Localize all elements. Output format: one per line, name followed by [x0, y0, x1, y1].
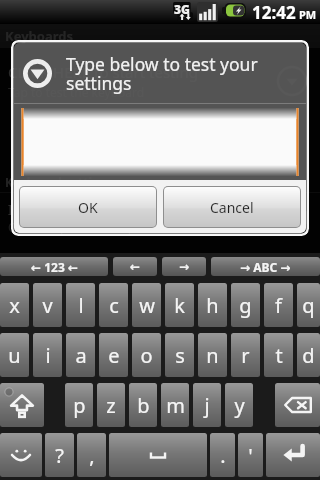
- button[interactable]: Enter: [266, 433, 320, 477]
- button[interactable]: n: [198, 333, 227, 377]
- staticText: ←: [130, 260, 141, 274]
- staticText: j: [204, 392, 210, 419]
- staticText: b: [137, 392, 150, 419]
- staticText: v: [42, 292, 53, 319]
- button[interactable]: w: [132, 283, 161, 327]
- button[interactable]: →: [162, 257, 206, 276]
- button[interactable]: Shift: [0, 383, 44, 427]
- button[interactable]: j: [193, 383, 221, 427]
- staticText: 3G: [174, 1, 190, 17]
- staticText: OK: [78, 198, 98, 217]
- button[interactable]: c: [99, 283, 128, 327]
- staticText: Input language: [8, 199, 117, 219]
- staticText: d: [302, 342, 315, 369]
- staticText: Cancel: [210, 198, 254, 217]
- staticText: y: [234, 392, 245, 419]
- button[interactable]: p: [65, 383, 93, 427]
- staticText: e: [108, 342, 120, 369]
- staticText: a: [75, 342, 87, 369]
- button[interactable]: g: [231, 283, 260, 327]
- button[interactable]: OK: [20, 187, 156, 227]
- button[interactable]: e: [99, 333, 128, 377]
- button[interactable]: u: [0, 333, 29, 377]
- staticText: f: [275, 292, 282, 319]
- staticText: z: [106, 392, 116, 419]
- button[interactable]: t: [264, 333, 293, 377]
- staticText: Tap to test the keyboard: [8, 84, 145, 100]
- staticText: q: [302, 292, 315, 319]
- staticText: l: [78, 292, 84, 319]
- staticText: u: [8, 342, 21, 369]
- staticText: m: [166, 392, 185, 419]
- staticText: h: [206, 292, 219, 319]
- staticText: .: [220, 442, 226, 469]
- button[interactable]: x: [0, 283, 29, 327]
- staticText: Keyboards: [5, 27, 73, 45]
- button[interactable]: r: [231, 333, 260, 377]
- button[interactable]: o: [132, 333, 161, 377]
- button[interactable]: ?: [45, 433, 74, 477]
- staticText: ': [248, 442, 253, 469]
- button[interactable]: i: [33, 333, 62, 377]
- button[interactable]: a: [66, 333, 95, 377]
- staticText: QWERTZ (Switzerland): [8, 219, 132, 235]
- staticText: r: [241, 342, 250, 369]
- button[interactable]: l: [66, 283, 95, 327]
- button[interactable]: y: [225, 383, 253, 427]
- button[interactable]: d: [297, 333, 320, 377]
- staticText: t: [275, 342, 283, 369]
- staticText: o: [140, 342, 153, 369]
- button[interactable]: z: [97, 383, 125, 427]
- staticText: w: [139, 292, 155, 319]
- staticText: p: [73, 392, 86, 419]
- button[interactable]: q: [297, 283, 320, 327]
- button[interactable]: b: [129, 383, 157, 427]
- staticText: → ABC →: [240, 259, 291, 275]
- button[interactable]: .: [210, 433, 235, 477]
- staticText: x: [9, 292, 20, 319]
- button[interactable]: Cancel: [164, 187, 300, 227]
- staticText: s: [175, 342, 185, 369]
- button[interactable]: k: [165, 283, 194, 327]
- staticText: n: [206, 342, 219, 369]
- button[interactable]: Delete: [275, 383, 320, 427]
- staticText: ← 123 ←: [31, 259, 78, 275]
- staticText: ?: [55, 442, 64, 469]
- button[interactable]: s: [165, 333, 194, 377]
- staticText: g: [239, 292, 252, 319]
- staticText: Keyboard settings: [5, 174, 114, 190]
- button[interactable]: → ABC →: [211, 257, 320, 276]
- button[interactable]: m: [161, 383, 189, 427]
- staticText: Type below to test your settings: [66, 52, 300, 95]
- staticText: c: [109, 292, 119, 319]
- button[interactable]: ,: [77, 433, 106, 477]
- button[interactable]: Emoji: [0, 433, 42, 477]
- button[interactable]: f: [264, 283, 293, 327]
- button[interactable]: ← 123 ←: [0, 257, 108, 276]
- button[interactable]: h: [198, 283, 227, 327]
- staticText: →: [179, 260, 190, 274]
- button[interactable]: ←: [113, 257, 157, 276]
- staticText: ,: [89, 442, 95, 469]
- staticText: k: [174, 292, 185, 319]
- button[interactable]: Space: [109, 433, 207, 477]
- button[interactable]: ': [238, 433, 263, 477]
- button[interactable]: v: [33, 283, 62, 327]
- staticText: CLICK HERE to start testing: [8, 62, 198, 82]
- staticText: i: [45, 342, 51, 369]
- staticText: 12:42: [252, 1, 296, 24]
- staticText: PM: [299, 7, 317, 22]
